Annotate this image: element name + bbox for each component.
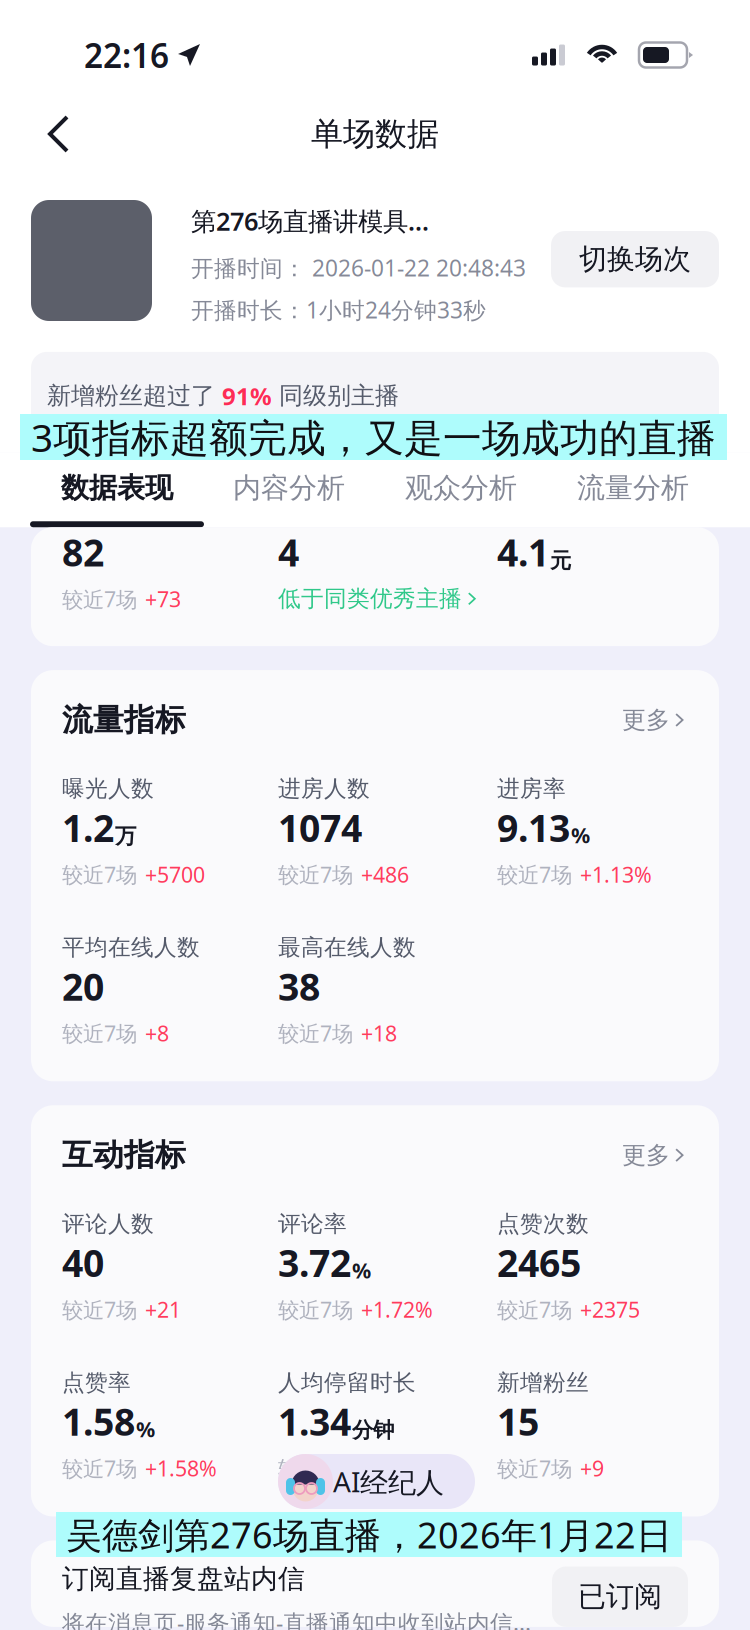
- staticText: 较近7场: [497, 1454, 572, 1482]
- staticText: 新增粉丝: [497, 1369, 589, 1396]
- staticText: +1.13%: [580, 860, 652, 888]
- staticText: +2375: [580, 1295, 640, 1324]
- staticText: 1.2: [62, 803, 114, 852]
- button[interactable]: 更多: [622, 705, 688, 735]
- staticText: 22:16: [84, 33, 169, 77]
- staticText: 较近7场: [62, 1295, 137, 1324]
- staticText: +1.72%: [361, 1295, 433, 1324]
- staticText: +21: [145, 1295, 181, 1324]
- staticText: +73: [145, 585, 181, 613]
- staticText: 15: [497, 1397, 539, 1446]
- staticText: 3.72: [278, 1238, 351, 1287]
- staticText: 1.34: [278, 1397, 351, 1446]
- staticText: 较近7场: [62, 585, 137, 613]
- staticText: 评论率: [278, 1210, 347, 1238]
- staticText: 38: [278, 961, 320, 1011]
- button[interactable]: 返回: [22, 102, 96, 166]
- staticText: 1074: [278, 803, 362, 852]
- staticText: 分钟: [352, 1417, 394, 1443]
- staticText: 吴德剑第276场直播，2026年1月22日: [66, 1511, 672, 1558]
- staticText: 更多: [622, 1140, 670, 1170]
- staticText: 较近7场: [278, 1454, 353, 1482]
- staticText: 较近7场: [278, 1295, 353, 1324]
- staticText: 2465: [497, 1238, 581, 1287]
- staticText: +1.58%: [145, 1454, 217, 1482]
- staticText: %: [352, 1256, 371, 1284]
- staticText: 订阅直播复盘站内信: [62, 1562, 305, 1595]
- staticText: 较近7场: [497, 860, 572, 888]
- staticText: AI经纪人: [333, 1463, 444, 1500]
- staticText: 人均停留时长: [278, 1369, 416, 1396]
- staticText: 较近7场: [62, 1454, 137, 1482]
- staticText: 较近7场: [62, 1019, 137, 1047]
- button[interactable]: 观众分析: [374, 453, 546, 527]
- staticText: 开播时间： 2026-01-22 20:48:43: [191, 253, 526, 283]
- staticText: 较近7场: [278, 1019, 353, 1047]
- staticText: 流量指标: [62, 701, 186, 739]
- staticText: 观众分析: [405, 471, 517, 505]
- staticText: 同级别主播: [272, 381, 399, 411]
- staticText: 进房率: [497, 775, 566, 803]
- staticText: +8: [145, 1019, 169, 1047]
- staticText: +18: [361, 1019, 397, 1047]
- staticText: %: [136, 1415, 155, 1443]
- staticText: 更多: [622, 705, 670, 735]
- staticText: 20: [62, 961, 104, 1011]
- staticText: 互动指标: [62, 1136, 186, 1174]
- staticText: 开播时长：1小时24分钟33秒: [191, 295, 486, 325]
- button[interactable]: 已订阅: [552, 1566, 688, 1627]
- button[interactable]: 切换场次: [551, 231, 719, 287]
- staticText: 已订阅: [578, 1579, 662, 1614]
- staticText: 低于同类优秀主播: [278, 585, 462, 613]
- staticText: 3项指标超额完成，又是一场成功的直播: [31, 411, 716, 463]
- staticText: 内容分析: [233, 471, 345, 505]
- staticText: +486: [361, 860, 409, 888]
- staticText: 4.1: [497, 527, 549, 577]
- staticText: 最高在线人数: [278, 934, 416, 961]
- staticText: 将在消息页-服务通知-直播通知中收到站内信推送: [62, 1607, 552, 1630]
- staticText: 9.13: [497, 803, 570, 852]
- button[interactable]: 数据表现: [30, 453, 202, 527]
- staticText: 4: [278, 527, 299, 577]
- staticText: 40: [62, 1238, 104, 1287]
- staticText: 切换场次: [579, 242, 691, 276]
- staticText: 较近7场: [278, 860, 353, 888]
- staticText: 流量分析: [577, 471, 689, 505]
- staticText: 1.58: [62, 1397, 135, 1446]
- button[interactable]: 更多: [622, 1140, 688, 1170]
- staticText: 第276场直播讲模具…: [191, 204, 429, 238]
- staticText: 较近7场: [62, 860, 137, 888]
- staticText: 进房人数: [278, 775, 370, 803]
- staticText: %: [571, 821, 590, 849]
- button[interactable]: AI经纪人: [278, 1454, 475, 1509]
- staticText: 元: [550, 548, 571, 574]
- staticText: 点赞次数: [497, 1210, 589, 1238]
- staticText: 平均在线人数: [62, 934, 200, 961]
- button[interactable]: 流量分析: [546, 453, 718, 527]
- staticText: 万: [115, 823, 136, 849]
- staticText: 单场数据: [311, 114, 439, 154]
- staticText: +9: [580, 1454, 604, 1482]
- staticText: 91%: [222, 380, 272, 412]
- staticText: 82: [62, 527, 104, 577]
- button[interactable]: 内容分析: [202, 453, 374, 527]
- staticText: 评论人数: [62, 1210, 154, 1238]
- staticText: 数据表现: [61, 471, 173, 505]
- staticText: +5700: [145, 860, 205, 888]
- staticText: 曝光人数: [62, 775, 154, 803]
- staticText: 较近7场: [497, 1295, 572, 1324]
- staticText: 新增粉丝超过了: [47, 381, 222, 411]
- staticText: 点赞率: [62, 1369, 131, 1396]
